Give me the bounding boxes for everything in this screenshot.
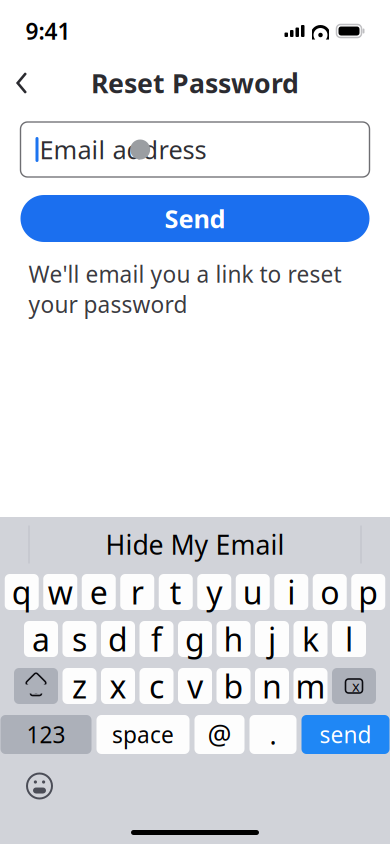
staticText: r — [131, 571, 144, 613]
button[interactable]: Hide My Email — [75, 522, 315, 566]
button[interactable]: b — [216, 668, 250, 704]
staticText: u — [243, 571, 263, 613]
button[interactable]: Email address — [20, 122, 369, 177]
button[interactable]: m — [293, 668, 327, 704]
staticText: Hide My Email — [105, 527, 284, 562]
staticText: 9:41 — [25, 16, 70, 46]
staticText: q — [12, 571, 32, 613]
button[interactable]: w — [43, 574, 77, 610]
staticText: z — [72, 665, 87, 707]
staticText: k — [302, 618, 319, 660]
staticText: Send — [164, 202, 225, 235]
staticText: send — [319, 719, 371, 749]
staticText: o — [320, 571, 339, 613]
staticText: w — [48, 571, 73, 613]
button[interactable]: v — [178, 668, 212, 704]
button[interactable]: r — [120, 574, 154, 610]
staticText: m — [295, 665, 325, 707]
staticText: s — [72, 618, 87, 660]
staticText: Reset Password — [91, 65, 299, 101]
staticText: b — [223, 665, 243, 707]
staticText: c — [149, 665, 164, 707]
button[interactable]: @ — [194, 715, 244, 754]
staticText: We'll email you a link to reset your pas… — [28, 259, 341, 319]
button[interactable]: d — [101, 621, 135, 657]
button[interactable]: o — [313, 574, 347, 610]
button[interactable]: Shift — [14, 668, 58, 704]
staticText: j — [268, 618, 276, 660]
button[interactable]: u — [236, 574, 270, 610]
button[interactable]: k — [293, 621, 327, 657]
button[interactable]: t — [159, 574, 193, 610]
staticText: n — [262, 665, 282, 707]
staticText: @ — [207, 717, 231, 752]
staticText: i — [287, 571, 295, 613]
staticText: Email address — [39, 133, 206, 166]
staticText: v — [187, 665, 203, 707]
staticText: space — [112, 719, 174, 749]
staticText: p — [358, 571, 378, 613]
staticText: a — [32, 618, 50, 660]
button[interactable]: z — [62, 668, 96, 704]
button[interactable]: s — [62, 621, 96, 657]
button[interactable]: y — [197, 574, 231, 610]
button[interactable]: i — [274, 574, 308, 610]
button[interactable]: a — [24, 621, 58, 657]
button[interactable]: Send — [20, 195, 369, 242]
button[interactable]: q — [5, 574, 39, 610]
button[interactable]: x — [101, 668, 135, 704]
staticText: d — [108, 618, 128, 660]
button[interactable]: j — [255, 621, 289, 657]
button[interactable]: Delete — [332, 668, 376, 704]
button[interactable]: p — [351, 574, 385, 610]
staticText: g — [185, 618, 205, 660]
button[interactable]: f — [139, 621, 173, 657]
button[interactable]: Back — [0, 61, 43, 105]
staticText: x — [109, 665, 126, 707]
button[interactable]: 123 — [0, 715, 91, 754]
button[interactable]: send — [301, 715, 389, 754]
staticText: l — [345, 618, 353, 660]
staticText: f — [151, 618, 162, 660]
button[interactable]: c — [139, 668, 173, 704]
button[interactable]: space — [96, 715, 189, 754]
staticText: h — [223, 618, 243, 660]
button[interactable]: l — [332, 621, 366, 657]
staticText: y — [206, 571, 222, 613]
button[interactable]: e — [82, 574, 116, 610]
staticText: x — [352, 676, 360, 696]
button[interactable]: h — [216, 621, 250, 657]
button[interactable]: n — [255, 668, 289, 704]
staticText: . — [269, 717, 276, 752]
staticText: e — [90, 571, 108, 613]
button[interactable]: . — [249, 715, 296, 754]
button[interactable]: g — [178, 621, 212, 657]
staticText: t — [170, 571, 182, 613]
staticText: 123 — [26, 719, 65, 749]
button[interactable]: Emoji — [14, 764, 64, 808]
